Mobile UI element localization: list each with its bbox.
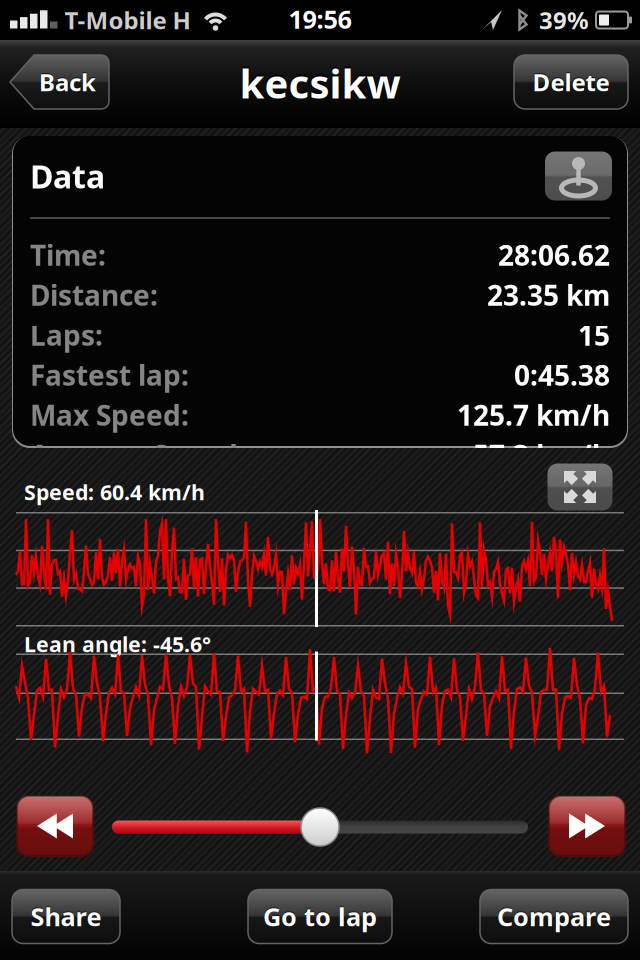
staticText: Lean angle: -45.6° xyxy=(24,630,211,658)
button[interactable]: Go to lap xyxy=(248,889,392,943)
staticText: 19:56 xyxy=(288,2,351,36)
staticText: 23.35 km xyxy=(487,276,610,314)
staticText: Compare xyxy=(497,900,611,933)
staticText: Back xyxy=(39,66,96,98)
staticText: kecsikw xyxy=(239,56,400,109)
staticText: Distance: xyxy=(30,276,158,314)
button[interactable]: Fullscreen chart xyxy=(547,463,612,510)
staticText: Average Speed: xyxy=(30,436,246,474)
staticText: 15 xyxy=(578,316,610,354)
button[interactable]: Previous lap xyxy=(17,796,93,856)
staticText: Fastest lap: xyxy=(30,356,189,394)
staticText: Delete xyxy=(532,66,609,98)
staticText: Speed: 60.4 km/h xyxy=(24,478,205,506)
staticText: Max Speed: xyxy=(30,396,189,434)
button[interactable]: Share xyxy=(12,889,120,943)
staticText: 28:06.62 xyxy=(498,236,610,274)
staticText: 39% xyxy=(539,4,589,36)
button[interactable]: Playback position xyxy=(112,808,528,846)
staticText: Share xyxy=(30,900,101,933)
staticText: 125.7 km/h xyxy=(457,396,610,434)
staticText: 57.3 km/h xyxy=(473,436,610,474)
button[interactable]: Compare xyxy=(480,889,628,943)
staticText: 0:45.38 xyxy=(514,356,610,394)
staticText: T-Mobile H xyxy=(64,4,190,36)
staticText: Go to lap xyxy=(263,900,377,933)
staticText: Time: xyxy=(30,236,106,274)
button[interactable]: Delete xyxy=(514,55,628,109)
button[interactable]: Show on map xyxy=(545,151,612,200)
staticText: Laps: xyxy=(30,316,103,354)
button[interactable]: Back xyxy=(10,55,109,109)
staticText: Data xyxy=(30,155,105,197)
button[interactable]: Next lap xyxy=(549,796,625,856)
